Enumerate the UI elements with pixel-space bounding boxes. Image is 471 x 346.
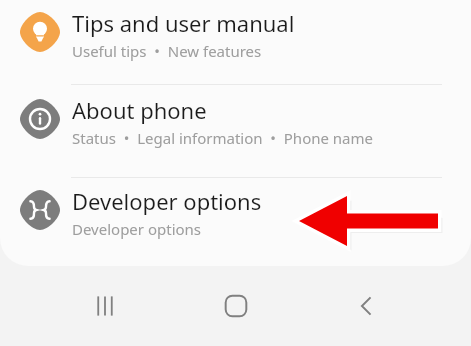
button[interactable]: Recent apps: [75, 276, 135, 336]
staticText: About phone: [72, 95, 207, 125]
button[interactable]: About phone: [0, 85, 471, 177]
staticText: Useful tips • New features: [72, 41, 262, 61]
staticText: Status • Legal information • Phone name: [72, 128, 374, 148]
button[interactable]: Home: [206, 276, 266, 336]
staticText: Developer options: [72, 186, 262, 216]
staticText: Tips and user manual: [72, 8, 295, 38]
staticText: Developer options: [72, 219, 202, 239]
button[interactable]: Developer options: [0, 178, 471, 264]
button[interactable]: Back: [336, 276, 396, 336]
button[interactable]: Tips and user manual: [0, 0, 471, 84]
